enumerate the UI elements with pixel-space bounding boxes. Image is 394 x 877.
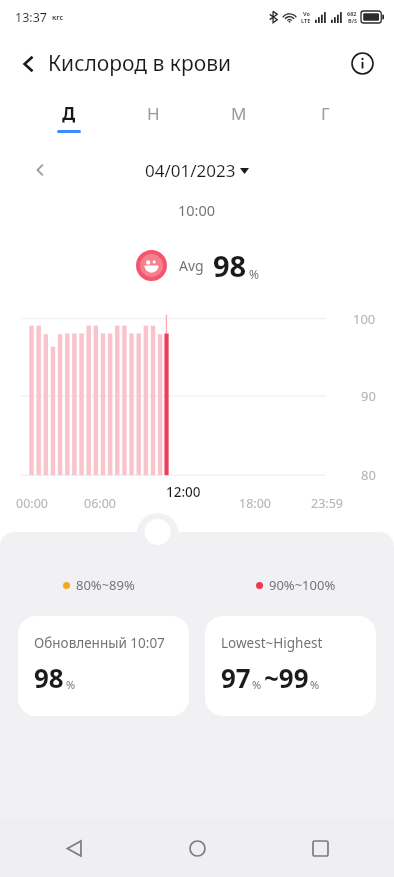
- staticText: кгс: [52, 13, 64, 23]
- staticText: ~99: [264, 660, 309, 695]
- staticText: 18:00: [239, 495, 271, 512]
- button[interactable]: Info: [344, 45, 380, 81]
- staticText: Lowest~Highest: [221, 634, 323, 652]
- staticText: 06:00: [84, 495, 116, 512]
- staticText: Д: [62, 102, 76, 125]
- staticText: 13:37: [15, 9, 47, 26]
- button[interactable]: Home: [173, 824, 221, 872]
- staticText: LTE: [301, 17, 311, 24]
- button[interactable]: Lowest~Highest: [205, 616, 376, 716]
- staticText: %: [249, 266, 259, 282]
- staticText: 12:00: [166, 483, 201, 501]
- staticText: Avg: [179, 256, 204, 275]
- staticText: 682: [347, 10, 357, 17]
- staticText: 97: [221, 660, 251, 695]
- button[interactable]: Г: [282, 92, 368, 142]
- staticText: %: [66, 677, 76, 692]
- button[interactable]: Back: [50, 824, 98, 872]
- staticText: 00:00: [16, 495, 48, 512]
- staticText: 100: [353, 310, 376, 328]
- button[interactable]: Back: [0, 39, 240, 88]
- button[interactable]: М: [196, 92, 282, 142]
- staticText: 98: [213, 246, 247, 285]
- staticText: %: [252, 677, 262, 692]
- button[interactable]: 04/01/2023: [139, 157, 255, 184]
- other: Back: [18, 53, 40, 75]
- staticText: 04/01/2023: [145, 159, 236, 182]
- staticText: 98: [34, 660, 64, 695]
- staticText: Н: [147, 102, 160, 125]
- staticText: 90%~100%: [269, 576, 336, 594]
- staticText: 80: [361, 466, 376, 484]
- button[interactable]: Previous day: [26, 156, 54, 184]
- staticText: 23:59: [311, 495, 343, 512]
- button[interactable]: Recent apps: [296, 824, 344, 872]
- staticText: 10:00: [178, 200, 216, 220]
- staticText: Г: [321, 102, 330, 125]
- button[interactable]: Н: [111, 92, 196, 142]
- button[interactable]: Обновленный 10:07: [18, 616, 189, 716]
- staticText: Кислород в крови: [48, 49, 232, 78]
- staticText: 80%~89%: [76, 576, 135, 594]
- staticText: 90: [361, 387, 376, 405]
- staticText: Обновленный 10:07: [34, 634, 165, 652]
- staticText: %: [310, 677, 320, 692]
- staticText: Vo: [303, 10, 310, 17]
- button[interactable]: Д: [26, 92, 111, 142]
- staticText: B/S: [348, 17, 357, 24]
- staticText: М: [231, 102, 247, 125]
